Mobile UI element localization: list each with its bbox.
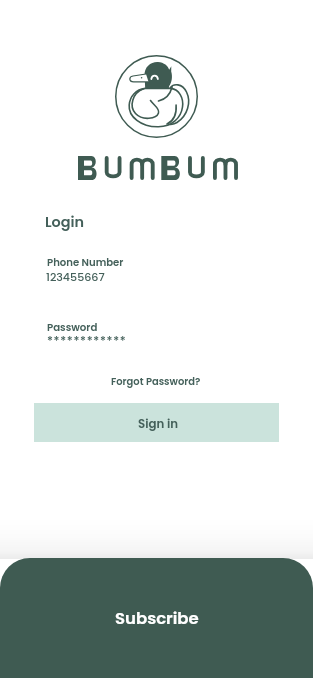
staticText: Sign in xyxy=(138,416,179,433)
staticText: Login xyxy=(45,212,85,232)
staticText: 123455667 xyxy=(46,269,105,285)
button[interactable]: Forgot Password? xyxy=(105,371,207,393)
staticText: Forgot Password? xyxy=(111,375,201,389)
staticText: Password xyxy=(47,320,98,334)
button[interactable]: Subscribe xyxy=(0,558,313,678)
staticText: Subscribe xyxy=(115,607,199,630)
button[interactable]: Sign in xyxy=(34,403,279,442)
staticText: ************ xyxy=(47,333,127,350)
staticText: Phone Number xyxy=(47,255,124,269)
